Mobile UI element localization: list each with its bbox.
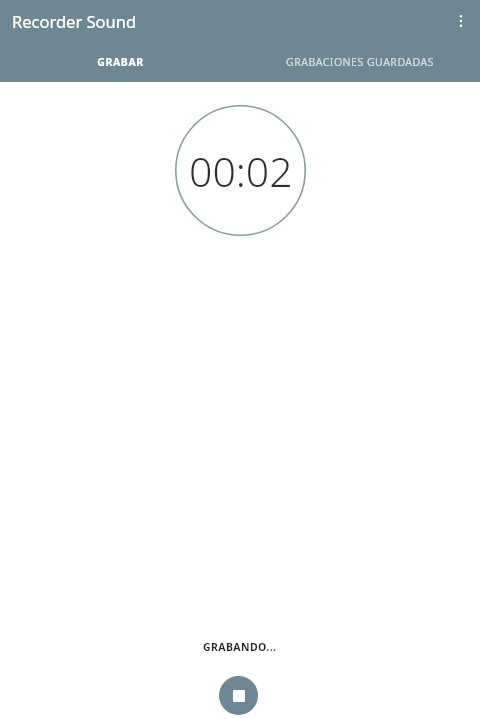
staticText: GRABACIONES GUARDADAS [286, 55, 434, 69]
button[interactable]: More options [446, 6, 476, 36]
button[interactable]: Stop recording [219, 676, 258, 715]
staticText: Recorder Sound [12, 10, 137, 32]
button[interactable]: GRABACIONES GUARDADAS [240, 41, 480, 82]
staticText: GRABANDO... [203, 640, 277, 654]
staticText: 00:02 [189, 143, 293, 199]
button[interactable]: GRABAR [0, 41, 240, 82]
staticText: GRABAR [97, 55, 144, 69]
